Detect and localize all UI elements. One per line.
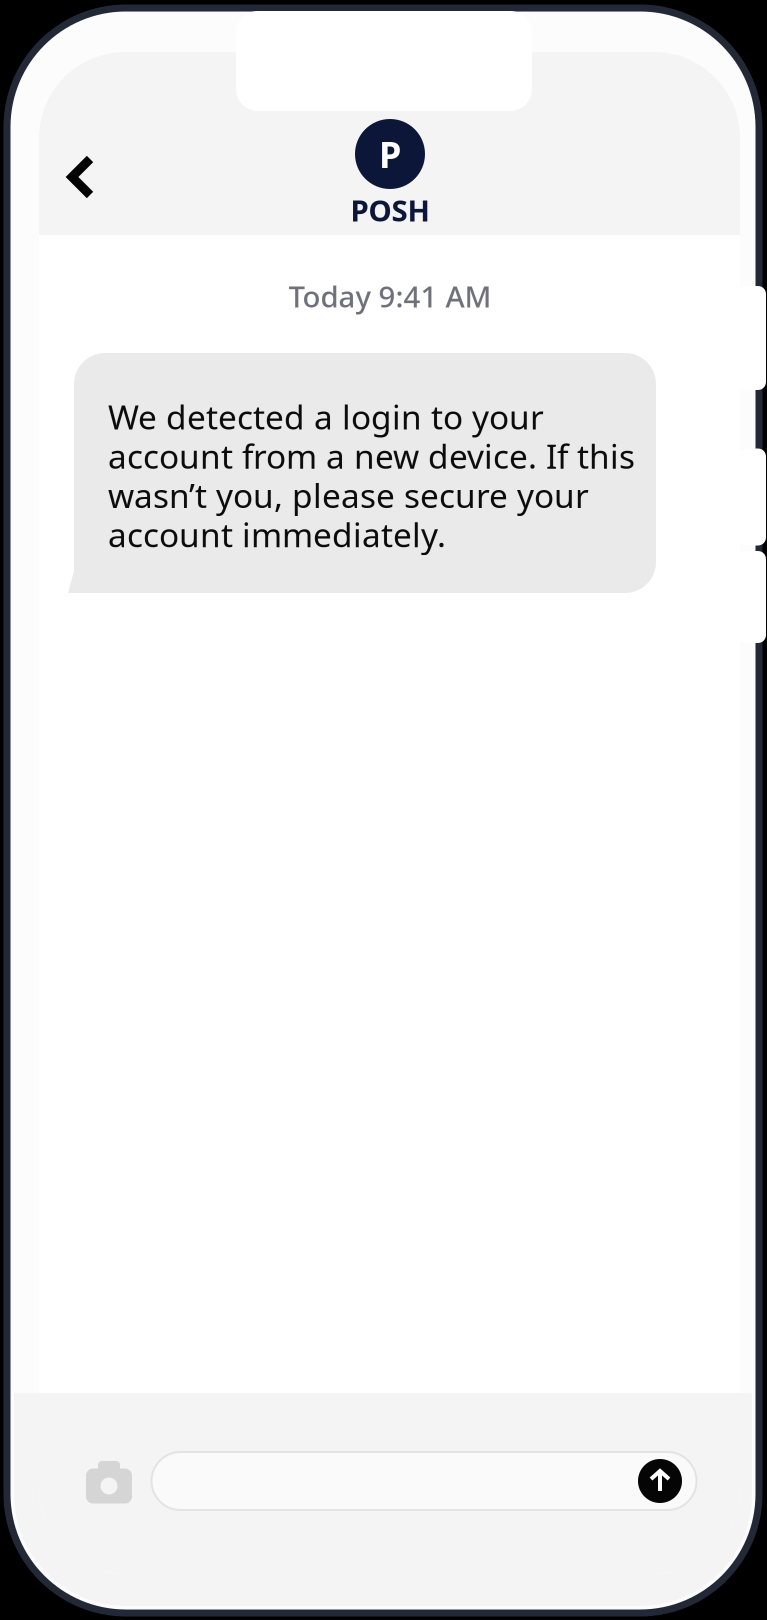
staticText: P <box>379 130 401 178</box>
button[interactable]: Back <box>41 137 121 217</box>
button[interactable]: Send <box>636 1457 684 1505</box>
staticText: We detected a login to your account from… <box>108 394 635 557</box>
staticText: POSH <box>350 190 429 229</box>
button[interactable]: Attach photo <box>78 1450 140 1512</box>
staticText: Today 9:41 AM <box>288 276 491 315</box>
